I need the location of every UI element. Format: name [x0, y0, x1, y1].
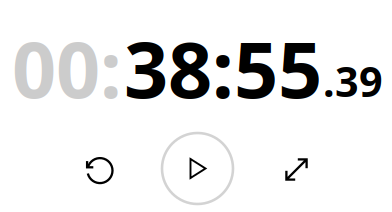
button[interactable]: Start: [162, 133, 233, 204]
button[interactable]: Reset: [74, 132, 126, 208]
button[interactable]: Full screen: [271, 132, 322, 207]
staticText: .39: [323, 53, 383, 108]
staticText: 00:: [12, 17, 122, 119]
staticText: 38:55: [124, 17, 322, 119]
